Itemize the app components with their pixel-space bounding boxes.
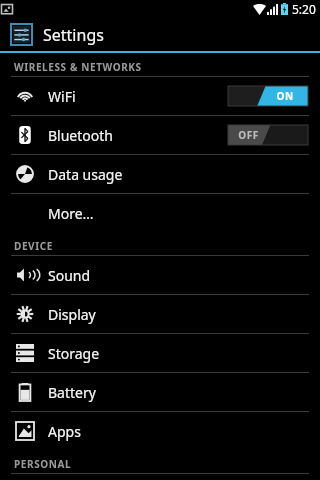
staticText: Battery	[48, 383, 96, 402]
staticText: Apps	[48, 422, 81, 441]
staticText: 5:20	[292, 1, 316, 17]
button[interactable]: Toggle off	[228, 125, 308, 145]
staticText: DEVICE	[14, 239, 53, 253]
button[interactable]: Apps	[0, 412, 320, 450]
staticText: WIRELESS & NETWORKS	[14, 60, 142, 74]
button[interactable]: More…	[0, 194, 320, 232]
button[interactable]: Storage	[0, 334, 320, 372]
button[interactable]: Display	[0, 295, 320, 333]
button[interactable]: Bluetooth	[0, 116, 320, 154]
staticText: Settings	[43, 24, 104, 46]
staticText: Data usage	[48, 165, 123, 184]
staticText: Sound	[48, 266, 91, 285]
staticText: WiFi	[48, 87, 76, 106]
button[interactable]: Battery	[0, 373, 320, 411]
staticText: Bluetooth	[48, 126, 113, 145]
staticText: ON	[276, 89, 294, 103]
button[interactable]: Sound	[0, 256, 320, 294]
staticText: More…	[48, 204, 94, 223]
staticText: OFF	[238, 128, 259, 142]
staticText: Display	[48, 305, 96, 324]
button[interactable]: Settings	[0, 18, 320, 51]
button[interactable]: Data usage	[0, 155, 320, 193]
staticText: Storage	[48, 344, 100, 363]
button[interactable]: WiFi	[0, 77, 320, 115]
button[interactable]: Toggle on	[228, 86, 308, 106]
staticText: PERSONAL	[14, 457, 72, 471]
